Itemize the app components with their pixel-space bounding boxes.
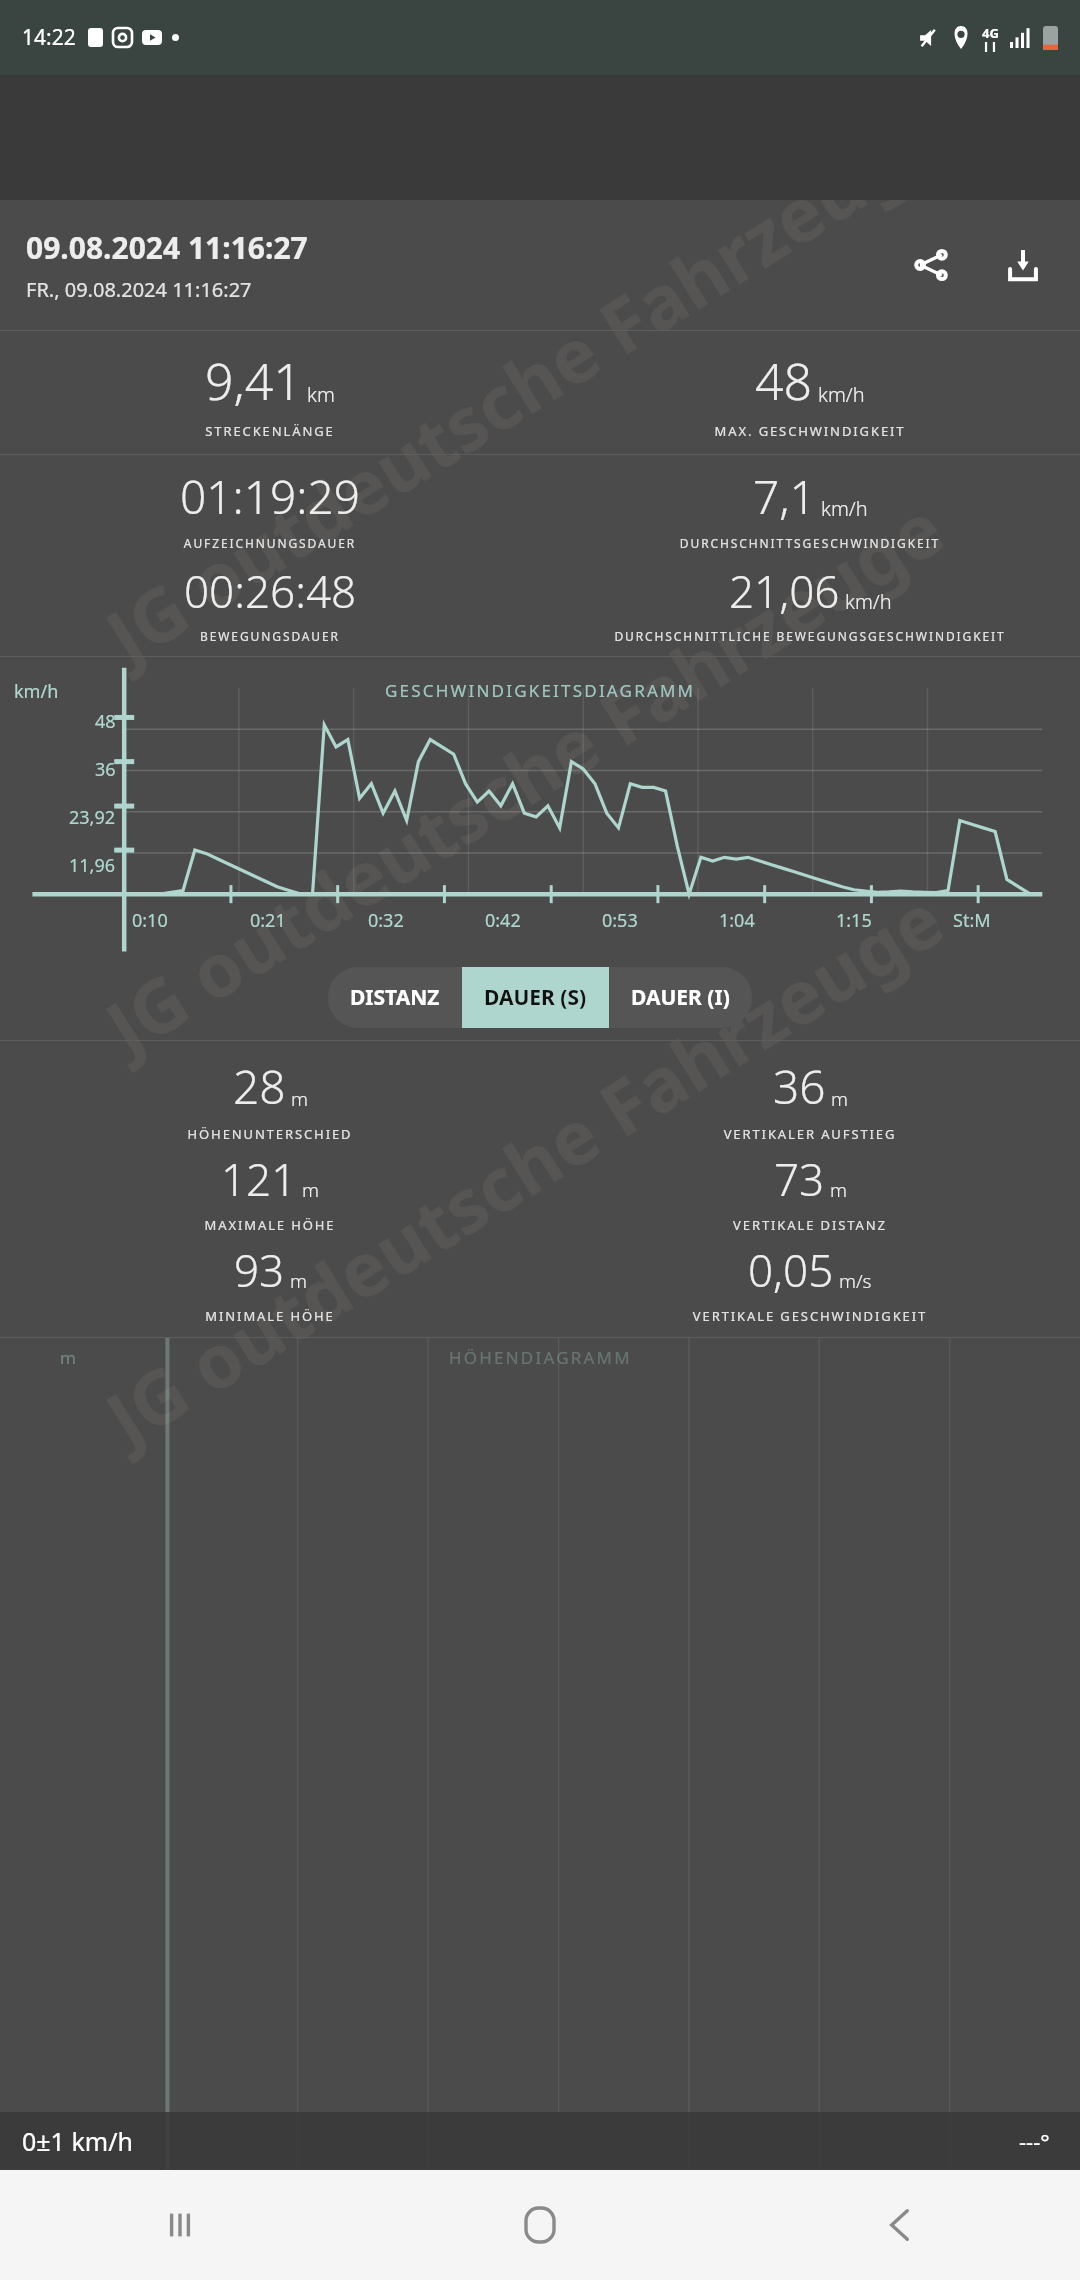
staticText: 7,1 (753, 465, 816, 528)
staticText: km/h (14, 679, 59, 704)
button[interactable]: 9,41 (0, 347, 540, 440)
staticText: km/h (818, 381, 865, 408)
staticText: 1:15 (836, 908, 953, 933)
staticText: m (290, 1268, 307, 1294)
staticText: 4G (982, 24, 999, 42)
staticText: 0:32 (368, 908, 485, 933)
staticText: 121 (221, 1149, 297, 1209)
button[interactable]: Share (900, 234, 962, 296)
button[interactable]: DAUER (S) (462, 967, 609, 1028)
button[interactable]: 36 (540, 1055, 1080, 1143)
button[interactable]: 00:26:48 (0, 561, 540, 644)
button[interactable]: Back (720, 2170, 1080, 2280)
staticText: m (302, 1177, 319, 1203)
button[interactable]: 73 (540, 1149, 1080, 1234)
staticText: AUFZEICHNUNGSDAUER (0, 535, 540, 551)
staticText: VERTIKALE DISTANZ (540, 1216, 1080, 1234)
staticText: 93 (234, 1240, 285, 1300)
staticText: m (291, 1086, 308, 1112)
staticText: MINIMALE HÖHE (0, 1307, 540, 1325)
staticText: ---° (1019, 2126, 1050, 2156)
staticText: 21,06 (729, 561, 840, 621)
staticText: VERTIKALER AUFSTIEG (540, 1125, 1080, 1143)
button[interactable]: DISTANZ (328, 967, 462, 1028)
staticText: 0±1 km/h (22, 2124, 133, 2158)
staticText: 73 (774, 1149, 825, 1209)
staticText: 36 (773, 1055, 826, 1118)
staticText: 0:53 (602, 908, 719, 933)
button[interactable]: 7,1 (546, 465, 1074, 551)
staticText: m/s (839, 1268, 872, 1294)
staticText: km/h (845, 588, 892, 615)
staticText: 23,92 (69, 805, 116, 830)
staticText: DURCHSCHNITTSGESCHWINDIGKEIT (546, 535, 1074, 551)
staticText: 09.08.2024 11:16:27 (26, 227, 308, 268)
staticText: FR., 09.08.2024 11:16:27 (26, 276, 252, 303)
staticText: km (307, 381, 335, 408)
staticText: km/h (821, 495, 868, 522)
staticText: 1:04 (719, 908, 836, 933)
staticText: 01:19:29 (180, 465, 361, 528)
staticText: 48 (755, 347, 813, 415)
button[interactable]: 01:19:29 (0, 465, 540, 551)
staticText: DURCHSCHNITTLICHE BEWEGUNGSGESCHWINDIGKE… (554, 628, 1066, 644)
staticText: GESCHWINDIGKEITSDIAGRAMM (385, 679, 696, 702)
button[interactable]: 48 (540, 347, 1080, 440)
staticText: MAXIMALE HÖHE (0, 1216, 540, 1234)
button[interactable]: Download (992, 234, 1054, 296)
button[interactable]: 21,06 (554, 561, 1066, 644)
staticText: 9,41 (205, 347, 302, 415)
staticText: m (830, 1177, 847, 1203)
staticText: JG outdeutsche Fahrzeuge (87, 86, 961, 685)
staticText: 11,96 (69, 853, 116, 878)
staticText: St:M (953, 908, 1070, 933)
staticText: m (60, 1346, 76, 1369)
button[interactable]: Home (360, 2170, 720, 2280)
staticText: VERTIKALE GESCHWINDIGKEIT (540, 1307, 1080, 1325)
button[interactable]: Recent apps (0, 2170, 360, 2280)
staticText: BEWEGUNGSDAUER (0, 628, 540, 644)
staticText: STRECKENLÄNGE (0, 422, 540, 440)
staticText: DAUER (S) (484, 983, 587, 1012)
staticText: 0,05 (748, 1240, 834, 1300)
staticText: DAUER (I) (631, 983, 730, 1012)
staticText: JG outdeutsche Fahrzeuge (87, 868, 961, 1467)
button[interactable]: 0,05 (540, 1240, 1080, 1325)
staticText: HÖHENUNTERSCHIED (0, 1125, 540, 1143)
button[interactable]: 121 (0, 1149, 540, 1234)
staticText: 0:21 (250, 908, 368, 933)
button[interactable]: DAUER (I) (609, 967, 752, 1028)
button[interactable]: 28 (0, 1055, 540, 1143)
staticText: 48 (95, 709, 116, 734)
staticText: HÖHENDIAGRAMM (449, 1346, 632, 1369)
staticText: 0:42 (485, 908, 602, 933)
staticText: JG outdeutsche Fahrzeuge (87, 477, 961, 1076)
staticText: 14:22 (22, 23, 76, 52)
staticText: DISTANZ (350, 983, 440, 1012)
staticText: 36 (95, 757, 116, 782)
staticText: m (831, 1086, 848, 1112)
staticText: 0:10 (132, 908, 250, 933)
staticText: 28 (233, 1055, 286, 1118)
staticText: 00:26:48 (184, 561, 357, 621)
button[interactable]: 93 (0, 1240, 540, 1325)
staticText: MAX. GESCHWINDIGKEIT (540, 422, 1080, 440)
